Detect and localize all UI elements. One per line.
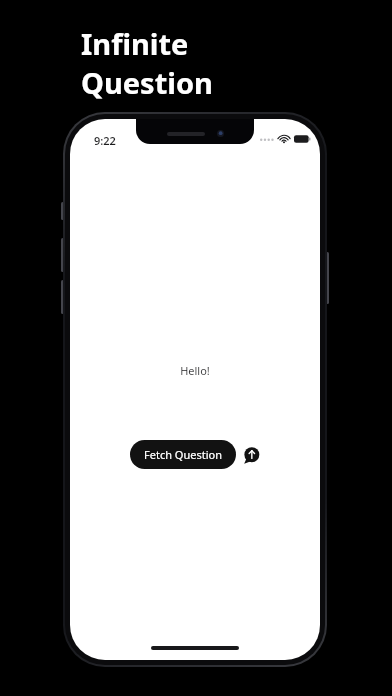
staticText: Hello!: [180, 363, 210, 378]
staticText: Question: [81, 63, 213, 102]
button[interactable]: Fetch Question: [130, 440, 236, 469]
staticText: 9:22: [94, 133, 116, 148]
staticText: Fetch Question: [144, 447, 222, 462]
button[interactable]: Send question: [242, 446, 260, 464]
staticText: Infinite: [81, 24, 189, 63]
